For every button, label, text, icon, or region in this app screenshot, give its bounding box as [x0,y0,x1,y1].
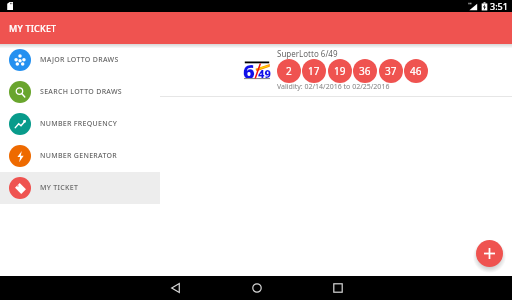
button[interactable]: Add ticket [476,240,503,267]
staticText: 36 [359,64,371,78]
staticText: MY TICKET [9,22,57,34]
staticText: MY TICKET [40,183,79,193]
button[interactable]: NUMBER FREQUENCY [0,108,160,140]
button[interactable]: MY TICKET [0,172,160,204]
button[interactable]: MAJOR LOTTO DRAWS [0,44,160,76]
button[interactable]: Recent apps [297,276,378,300]
button[interactable]: 6 [160,44,512,96]
staticText: 49 [258,66,271,81]
staticText: SEARCH LOTTO DRAWS [40,87,122,97]
button[interactable]: NUMBER GENERATOR [0,140,160,172]
staticText: SuperLotto 6/49 [277,48,338,59]
staticText: NUMBER FREQUENCY [40,119,118,129]
button[interactable]: Back [135,276,216,300]
staticText: 19 [334,64,346,78]
button[interactable]: SEARCH LOTTO DRAWS [0,76,160,108]
staticText: 37 [385,64,397,78]
staticText: 2 [286,64,292,78]
staticText: 46 [410,64,422,78]
staticText: NUMBER GENERATOR [40,151,118,161]
button[interactable]: Home [216,276,297,300]
staticText: 6 [243,58,255,78]
staticText: MAJOR LOTTO DRAWS [40,55,119,65]
staticText: 17 [308,64,320,78]
staticText: Validity: 02/14/2016 to 02/25/2016 [277,82,390,92]
staticText: 3:51 [490,0,508,12]
